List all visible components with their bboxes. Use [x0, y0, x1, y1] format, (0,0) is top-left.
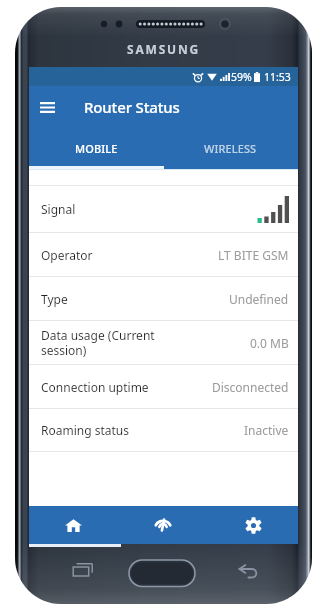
button[interactable]: Roaming status [29, 409, 298, 452]
button[interactable]: Signal [29, 186, 298, 233]
button[interactable]: Settings [208, 506, 298, 544]
staticText: Type [41, 291, 68, 307]
staticText: SAMSUNG [127, 41, 200, 57]
staticText: 59% [231, 70, 252, 84]
staticText: Inactive [244, 422, 289, 438]
staticText: LT BITE GSM [218, 247, 289, 263]
staticText: Roaming status [41, 422, 129, 438]
staticText: Undefined [229, 291, 289, 307]
button[interactable]: WIRELESS [163, 130, 298, 169]
staticText: Router Status [84, 97, 180, 117]
staticText: Disconnected [212, 379, 289, 395]
staticText: Data usage (Current session) [41, 327, 155, 358]
button[interactable]: Connection uptime [29, 365, 298, 409]
button[interactable]: MOBILE [29, 130, 163, 169]
staticText: MOBILE [75, 141, 118, 156]
staticText: Connection uptime [41, 379, 149, 395]
button[interactable]: Open navigation menu [29, 89, 65, 125]
staticText: WIRELESS [204, 141, 257, 156]
staticText: Signal [41, 201, 76, 217]
staticText: 0.0 MB [250, 335, 289, 351]
staticText: Operator [41, 247, 93, 263]
button[interactable]: Operator [29, 233, 298, 277]
button[interactable]: Home [29, 506, 118, 544]
button[interactable]: Type [29, 277, 298, 321]
staticText: 11:53 [264, 70, 291, 84]
button[interactable]: Wi-Fi tethering [118, 506, 208, 544]
button[interactable]: Data usage (Current session) [29, 321, 298, 365]
